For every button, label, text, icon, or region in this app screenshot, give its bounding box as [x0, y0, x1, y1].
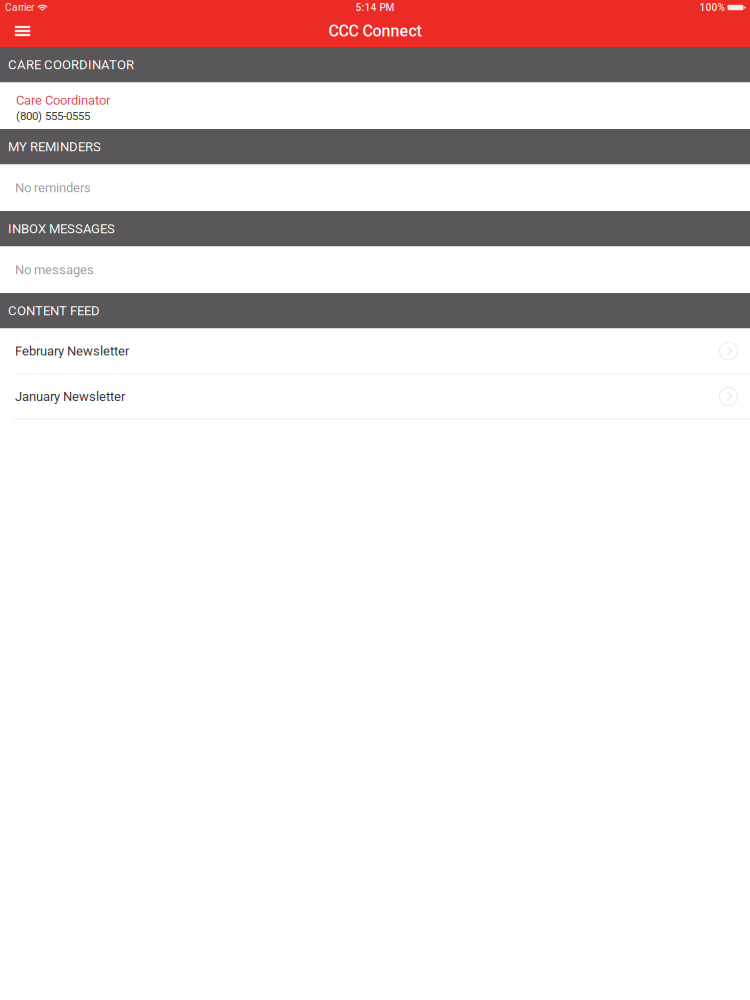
staticText: CCC Connect	[328, 22, 421, 40]
staticText: 100%	[699, 2, 724, 13]
button[interactable]: January Newsletter	[0, 374, 750, 418]
staticText: February Newsletter	[15, 343, 129, 359]
staticText: MY REMINDERS	[8, 139, 101, 154]
staticText: Carrier	[5, 2, 34, 13]
staticText: Care Coordinator	[16, 93, 110, 108]
staticText: CONTENT FEED	[8, 303, 100, 318]
button[interactable]: Care Coordinator	[0, 82, 750, 129]
staticText: 5:14 PM	[355, 2, 394, 13]
button[interactable]: February Newsletter	[0, 328, 750, 373]
staticText: No messages	[15, 262, 94, 277]
staticText: INBOX MESSAGES	[8, 221, 115, 236]
button[interactable]: Menu	[0, 15, 45, 47]
staticText: January Newsletter	[15, 389, 125, 404]
staticText: CARE COORDINATOR	[8, 57, 134, 72]
staticText: (800) 555-0555	[16, 109, 90, 123]
staticText: No reminders	[15, 180, 91, 195]
